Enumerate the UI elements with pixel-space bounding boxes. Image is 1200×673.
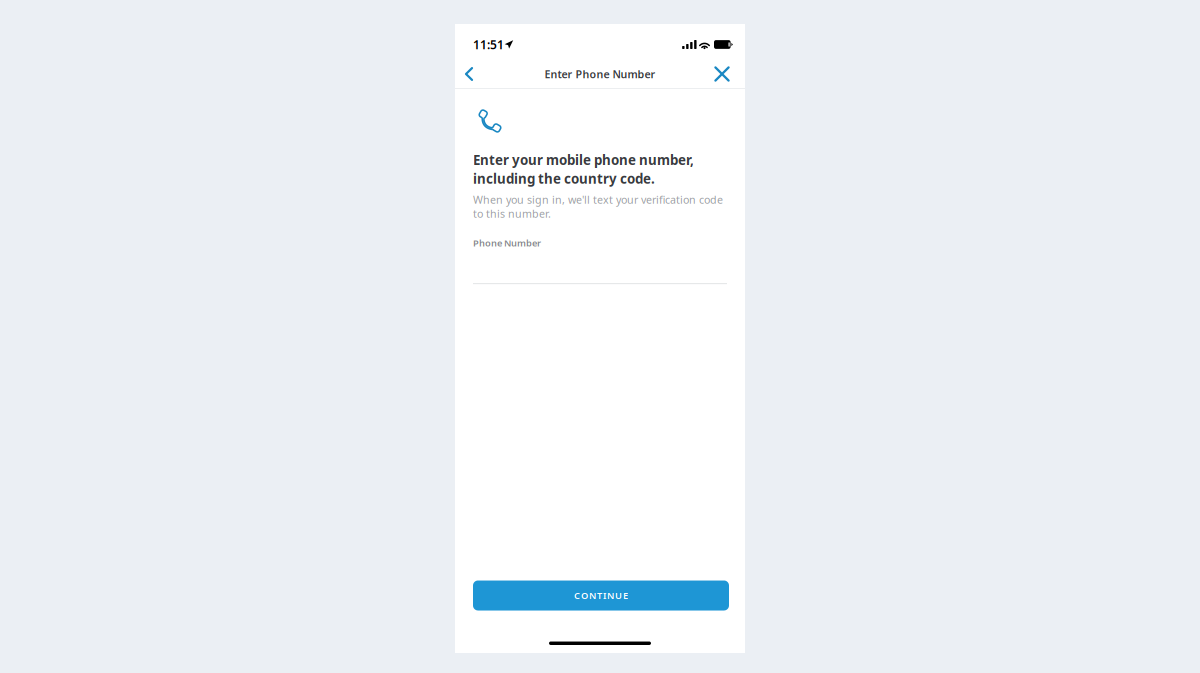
staticText: CONTINUE [574, 589, 628, 602]
staticText: Phone Number [473, 237, 541, 249]
staticText: Enter your mobile phone number, includin… [473, 151, 694, 187]
button[interactable]: CONTINUE [473, 580, 729, 610]
button[interactable]: Phone Number [473, 237, 727, 284]
staticText: 11:51 [473, 36, 504, 52]
staticText: When you sign in, we'll text your verifi… [473, 192, 723, 221]
button[interactable]: Close [709, 61, 735, 87]
staticText: Enter Phone Number [544, 67, 655, 81]
button[interactable]: Back [456, 61, 482, 87]
